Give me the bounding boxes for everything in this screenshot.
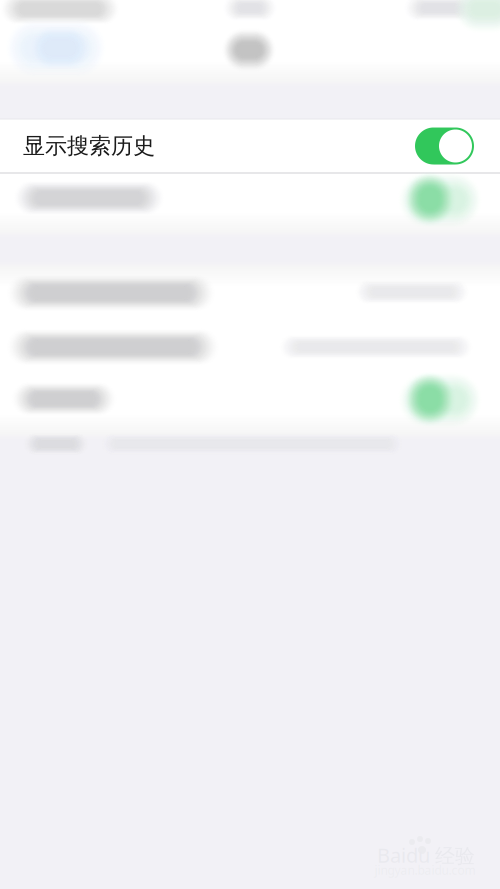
staticText: 显示搜索历史 (23, 132, 155, 160)
button[interactable]: 显示搜索历史 (0, 119, 500, 173)
staticText: Baidu 经验 (377, 841, 475, 869)
